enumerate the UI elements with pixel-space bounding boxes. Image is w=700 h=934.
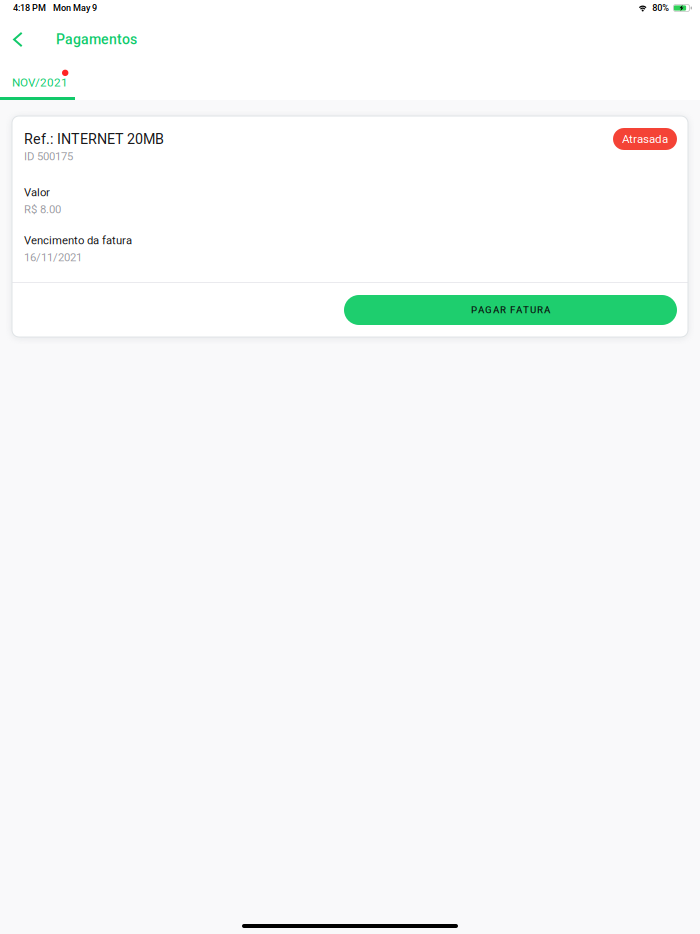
staticText: NOV/2021	[12, 76, 68, 89]
staticText: Atrasada	[622, 132, 668, 146]
staticText: Valor	[24, 186, 50, 199]
button[interactable]: P A G A R F A T U R A	[344, 295, 677, 325]
staticText: Mon May 9	[53, 3, 97, 13]
button[interactable]: Back	[2, 19, 34, 59]
staticText: R$ 8.00	[24, 203, 61, 216]
staticText: P A G A R F A T U R A	[471, 304, 550, 316]
staticText: Vencimento da fatura	[24, 234, 132, 247]
staticText: Pagamentos	[56, 31, 137, 48]
staticText: 4:18 PM	[13, 3, 46, 13]
staticText: 80%	[652, 3, 669, 13]
staticText: ID 500175	[24, 150, 73, 163]
button[interactable]: NOV/2021	[0, 57, 82, 98]
staticText: Ref.: INTERNET 20MB	[24, 131, 164, 147]
staticText: 16/11/2021	[24, 251, 82, 264]
